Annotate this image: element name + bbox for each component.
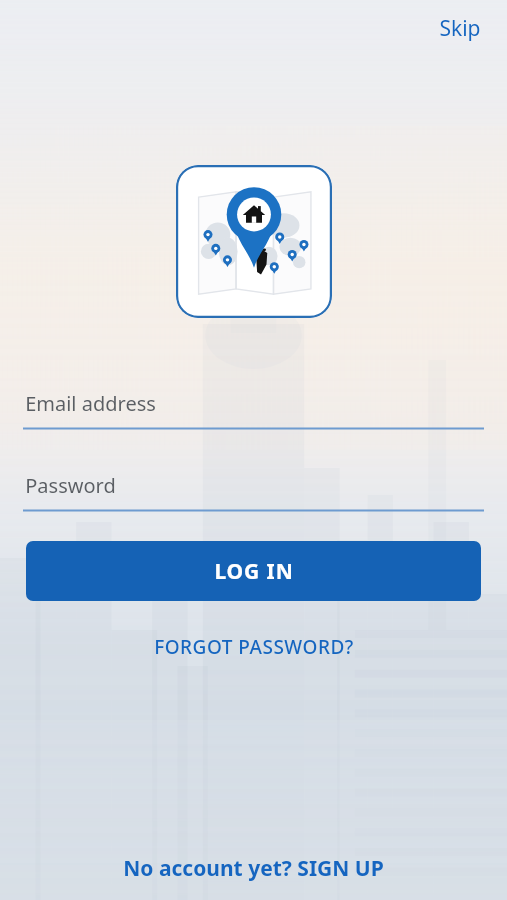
staticText: LOG IN [214, 557, 294, 586]
button[interactable]: Email address [0, 388, 507, 430]
staticText: FORGOT PASSWORD? [154, 634, 354, 660]
staticText: Password [25, 472, 116, 499]
button[interactable]: No account yet? SIGN UP [109, 848, 398, 889]
button[interactable]: Password [0, 470, 507, 512]
button[interactable]: App logo [176, 165, 332, 318]
staticText: No account yet? SIGN UP [123, 854, 384, 883]
staticText: Email address [25, 390, 156, 417]
button[interactable]: Skip [427, 6, 493, 51]
staticText: Skip [439, 14, 481, 43]
button[interactable]: FORGOT PASSWORD? [140, 628, 368, 666]
button[interactable]: LOG IN [26, 541, 481, 601]
